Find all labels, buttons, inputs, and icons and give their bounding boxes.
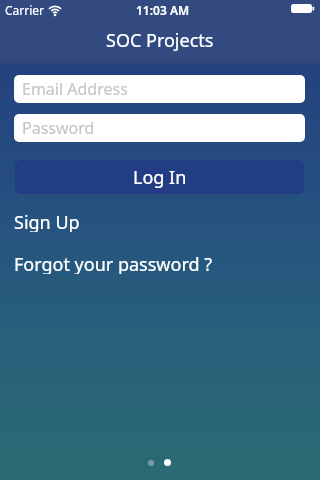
button[interactable]: Password [14,114,305,142]
staticText: 11:03 AM [136,2,190,18]
staticText: Password [22,117,95,139]
button[interactable]: Log In [15,160,304,194]
staticText: Carrier [5,2,45,18]
staticText: SOC Projects [106,28,214,53]
staticText: Forgot your password ? [14,252,213,274]
button[interactable]: Sign Up [14,210,114,232]
button[interactable]: Email Address [14,75,305,103]
button[interactable]: Forgot your password ? [14,252,234,274]
staticText: Log In [133,165,187,190]
staticText: Email Address [22,78,128,100]
staticText: Sign Up [14,210,80,232]
